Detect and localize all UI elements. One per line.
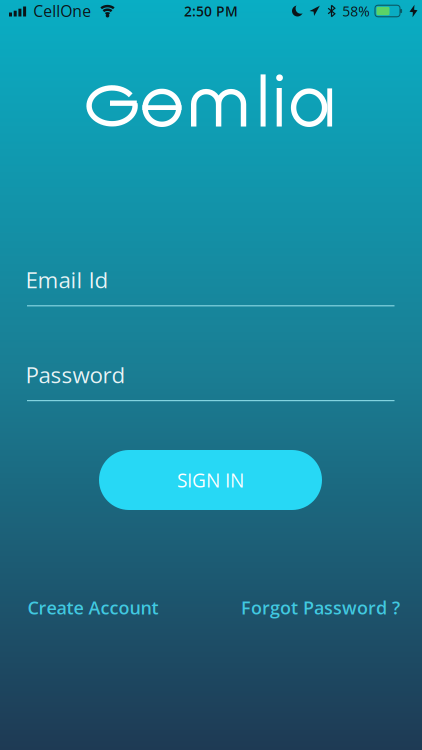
- button[interactable]: Email Id: [27, 264, 394, 306]
- button[interactable]: Forgot Password ?: [241, 595, 400, 620]
- button[interactable]: Create Account: [27, 595, 158, 620]
- staticText: Create Account: [27, 595, 158, 620]
- staticText: CellOne: [33, 0, 91, 22]
- staticText: Email Id: [25, 264, 108, 295]
- button[interactable]: Password: [27, 359, 394, 401]
- staticText: Password: [25, 359, 125, 390]
- staticText: 58%: [342, 2, 369, 20]
- staticText: 2:50 PM: [184, 2, 238, 20]
- button[interactable]: SIGN IN: [99, 450, 322, 510]
- staticText: SIGN IN: [177, 467, 244, 493]
- staticText: Forgot Password ?: [241, 595, 400, 620]
